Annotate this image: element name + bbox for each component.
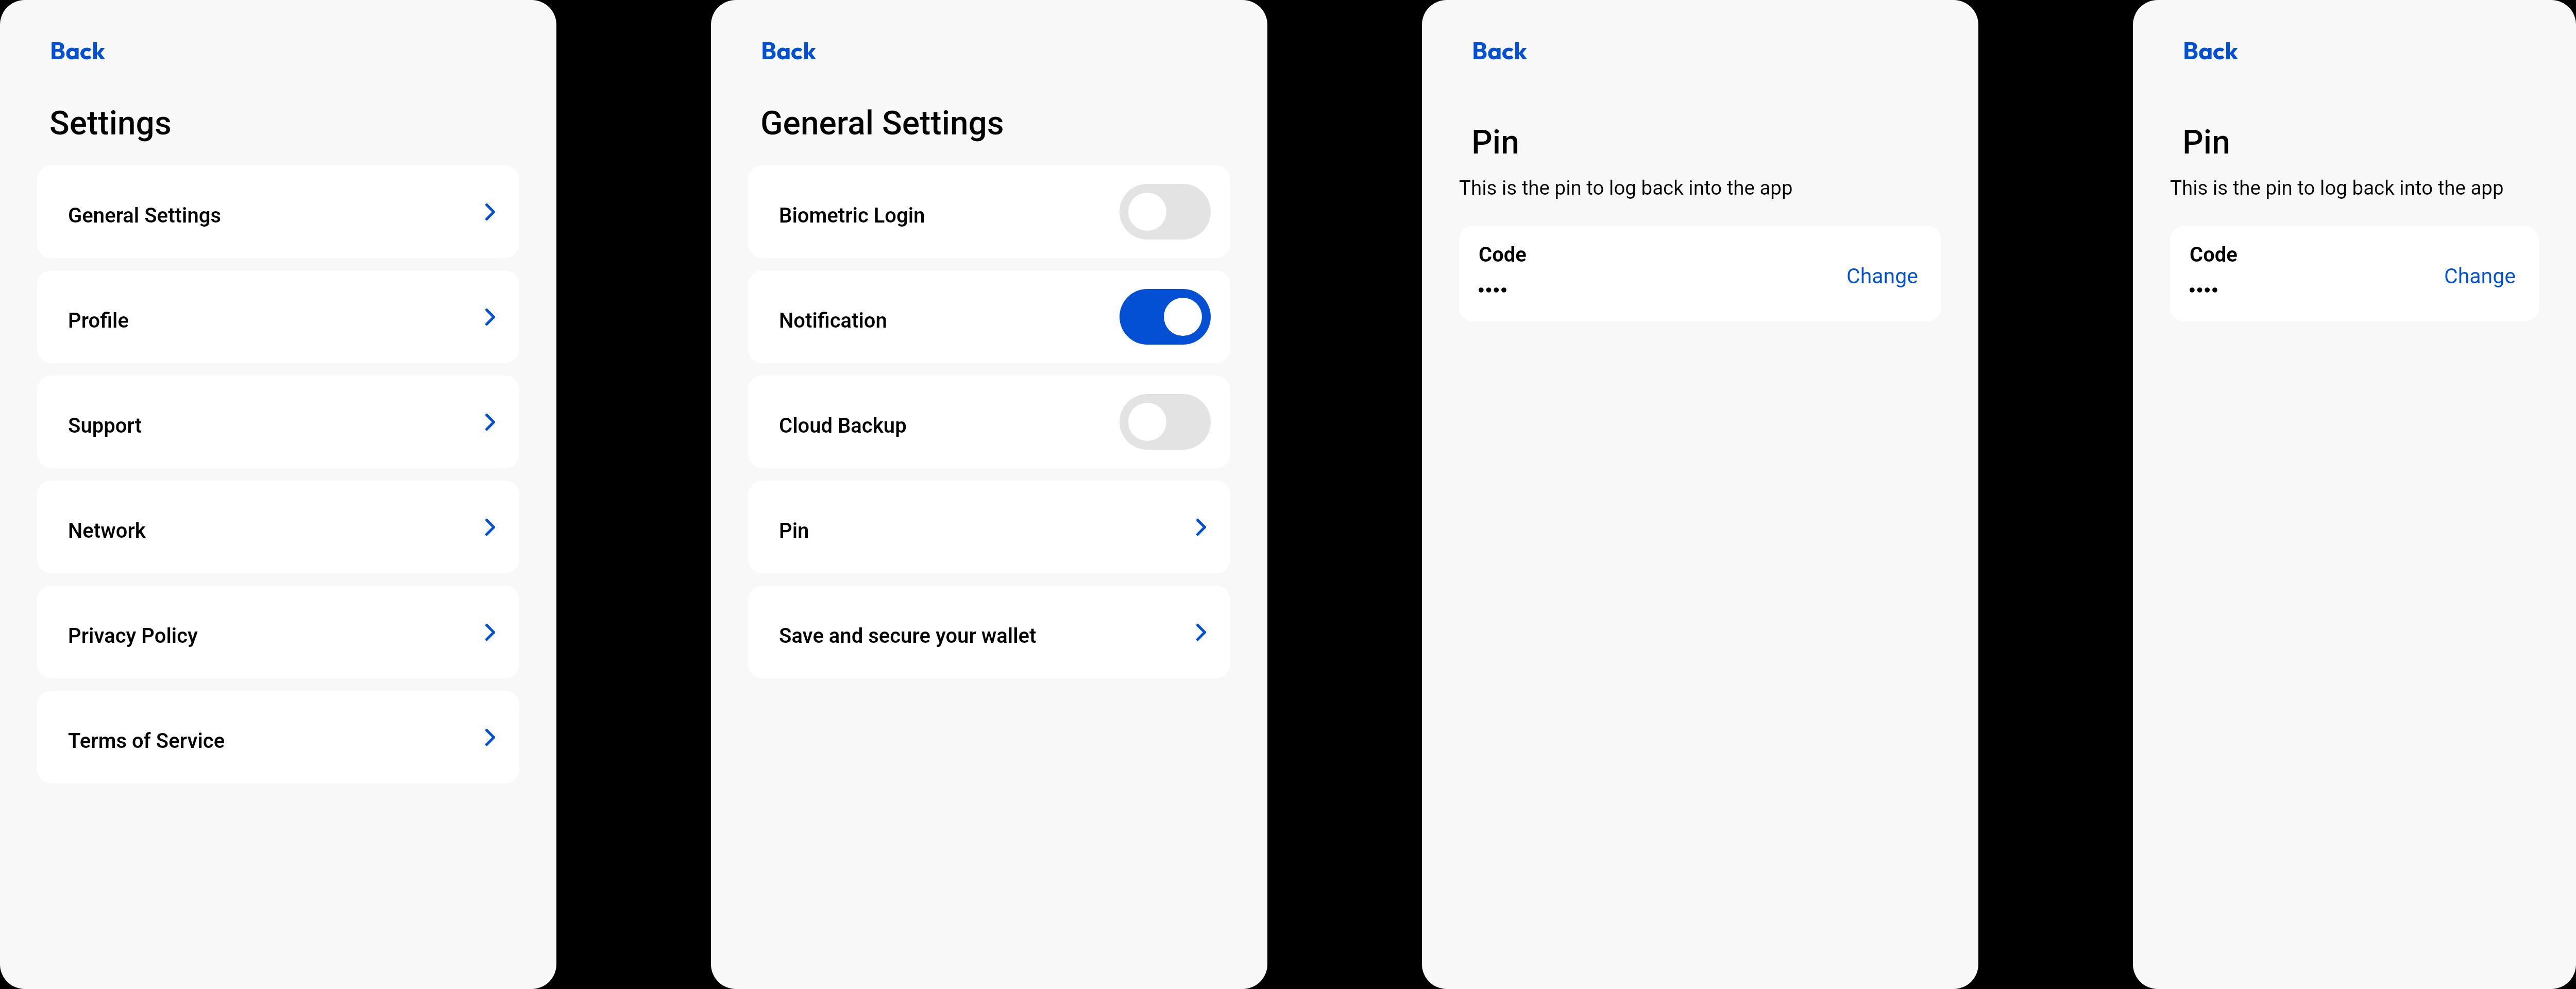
staticText: Profile bbox=[68, 309, 485, 333]
other: Open details bbox=[485, 414, 495, 431]
staticText: Code bbox=[1479, 243, 1527, 267]
button[interactable]: Pin bbox=[748, 481, 1230, 573]
staticText: Back bbox=[1472, 35, 1528, 65]
staticText: Support bbox=[68, 414, 485, 438]
staticText: Save and secure your wallet bbox=[779, 624, 1196, 648]
button[interactable]: Back bbox=[761, 35, 817, 65]
button[interactable]: Cloud Backup bbox=[748, 376, 1230, 468]
button[interactable]: Back bbox=[1472, 35, 1528, 65]
other: Open details bbox=[1196, 624, 1206, 641]
staticText: Back bbox=[50, 35, 106, 65]
staticText: General Settings bbox=[760, 104, 1004, 143]
button[interactable]: Terms of Service bbox=[37, 691, 519, 783]
staticText: Cloud Backup bbox=[779, 414, 1120, 438]
staticText: Change bbox=[2444, 264, 2516, 288]
button[interactable]: Support bbox=[37, 376, 519, 468]
staticText: Code bbox=[2190, 243, 2238, 267]
other: Open details bbox=[485, 309, 495, 326]
button[interactable]: General Settings bbox=[37, 165, 519, 258]
staticText: General Settings bbox=[68, 203, 485, 228]
button[interactable]: Back bbox=[50, 35, 106, 65]
staticText: Back bbox=[2183, 35, 2239, 65]
staticText: Pin bbox=[1471, 123, 1519, 162]
button[interactable]: Privacy Policy bbox=[37, 586, 519, 678]
other: Open details bbox=[1196, 519, 1206, 536]
button[interactable]: Switch off bbox=[1120, 184, 1211, 240]
button[interactable]: Biometric Login bbox=[748, 165, 1230, 258]
staticText: Privacy Policy bbox=[68, 624, 485, 648]
other: Open details bbox=[485, 729, 495, 746]
button[interactable]: Save and secure your wallet bbox=[748, 586, 1230, 678]
staticText: Notification bbox=[779, 309, 1120, 333]
other: Open details bbox=[485, 519, 495, 536]
staticText: Pin bbox=[2182, 123, 2230, 162]
staticText: Back bbox=[761, 35, 817, 65]
other: Open details bbox=[485, 624, 495, 641]
button[interactable]: Change bbox=[1846, 264, 1918, 288]
staticText: Settings bbox=[49, 104, 172, 143]
staticText: Network bbox=[68, 519, 485, 543]
other: Open details bbox=[485, 203, 495, 220]
staticText: Terms of Service bbox=[68, 729, 485, 753]
staticText: Pin bbox=[779, 519, 1196, 543]
staticText: Change bbox=[1846, 264, 1918, 288]
button[interactable]: Network bbox=[37, 481, 519, 573]
staticText: Biometric Login bbox=[779, 203, 1120, 228]
button[interactable]: Profile bbox=[37, 270, 519, 363]
button[interactable]: Notification bbox=[748, 270, 1230, 363]
button[interactable]: Back bbox=[2183, 35, 2239, 65]
button[interactable]: Change bbox=[2444, 264, 2516, 288]
staticText: This is the pin to log back into the app bbox=[2170, 176, 2504, 199]
button[interactable]: Switch off bbox=[1120, 394, 1211, 450]
staticText: This is the pin to log back into the app bbox=[1459, 176, 1793, 199]
button[interactable]: Switch on bbox=[1120, 289, 1211, 345]
